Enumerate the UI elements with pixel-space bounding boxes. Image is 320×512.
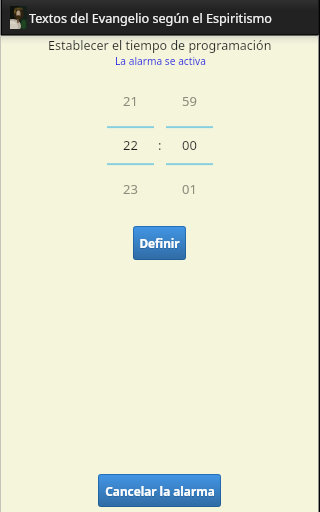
staticText: 23 [123, 180, 138, 194]
staticText: La alarma se activa [115, 54, 206, 68]
staticText: Cancelar la alarma [105, 484, 215, 500]
staticText: Definir [139, 235, 180, 251]
staticText: 22 [123, 136, 138, 150]
button[interactable]: Textos del Evangelio según el Espiritism… [0, 0, 320, 34]
staticText: Cancelar la alarma [105, 483, 215, 499]
staticText: 00 [182, 136, 197, 150]
button[interactable]: 22 [107, 136, 154, 150]
button[interactable]: Cancelar la alarma [99, 475, 220, 506]
staticText: : [158, 136, 162, 154]
staticText: 59 [182, 92, 197, 106]
staticText: Definir [139, 236, 180, 252]
staticText: 01 [182, 180, 197, 194]
button[interactable]: Definir [134, 227, 185, 259]
staticText: 21 [123, 92, 138, 106]
button[interactable]: 21 [107, 92, 154, 106]
button[interactable]: 23 [107, 180, 154, 194]
button[interactable]: 01 [166, 180, 213, 194]
staticText: Establecer el tiempo de programación [48, 37, 272, 54]
button[interactable]: 59 [166, 92, 213, 106]
button[interactable]: 00 [166, 136, 213, 150]
staticText: Textos del Evangelio según el Espiritism… [29, 9, 272, 26]
